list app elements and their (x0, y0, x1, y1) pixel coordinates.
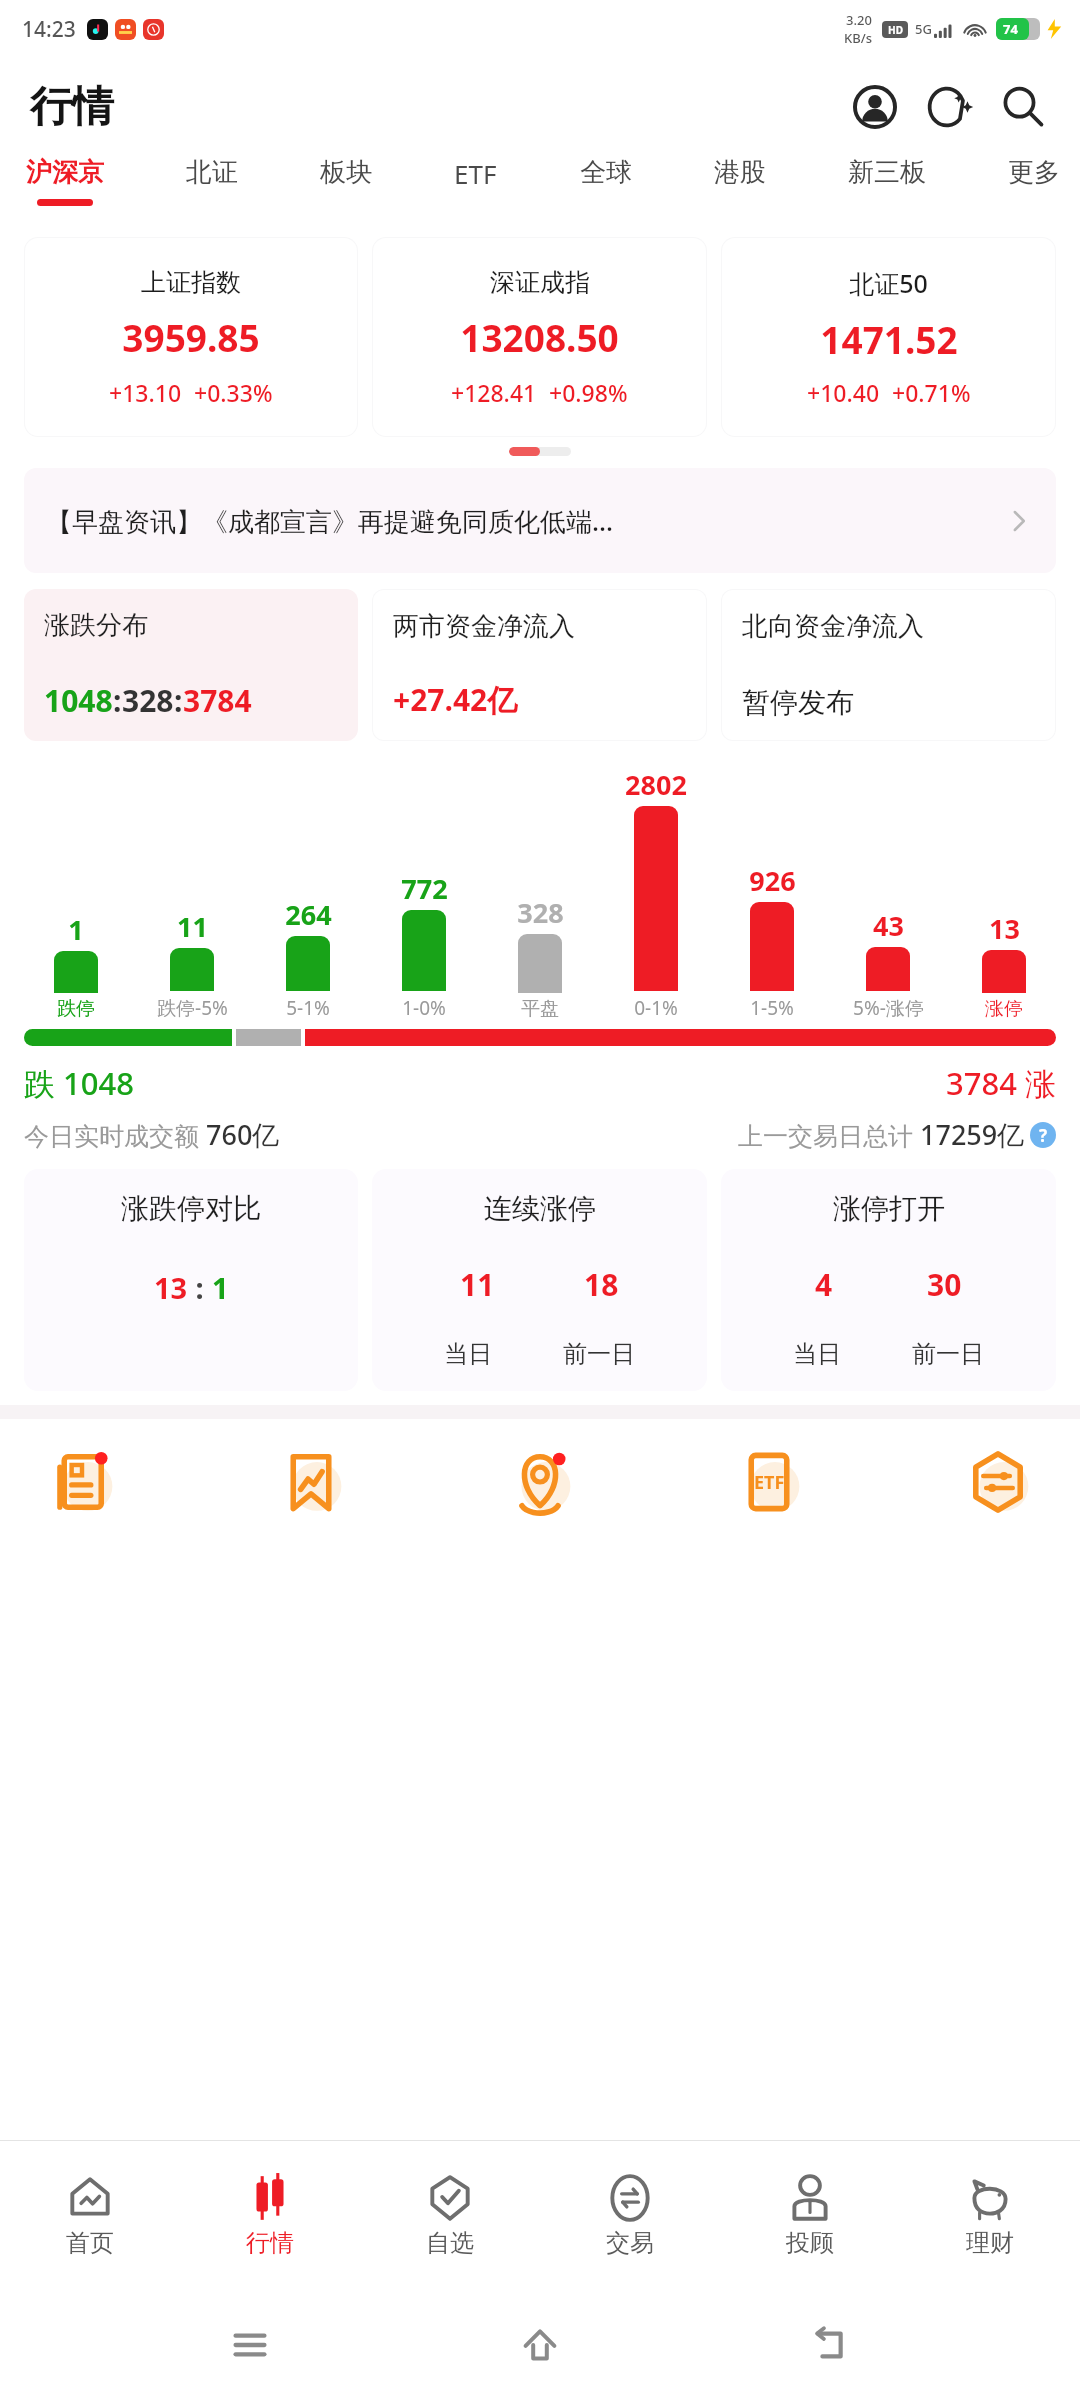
staticText: 上一交易日总计 (738, 1118, 920, 1152)
button[interactable]: Info (1030, 1122, 1056, 1148)
staticText: 涨跌停对比 (121, 1191, 261, 1226)
button[interactable]: Search (992, 76, 1054, 138)
staticText: 【早盘资讯】《成都宣言》再提避免同质化低端… (46, 503, 1004, 539)
button[interactable]: 自选 (360, 2154, 540, 2276)
staticText: 当日 (444, 1339, 492, 1369)
staticText: +0.98% (549, 377, 628, 408)
button[interactable]: 更多 (1006, 156, 1062, 199)
staticText: 前一日 (912, 1339, 984, 1369)
button[interactable]: 涨跌分布 (24, 589, 358, 741)
staticText: 暂停发布 (742, 685, 854, 720)
staticText: 5%-涨停 (853, 995, 924, 1021)
button[interactable]: ETF (452, 156, 499, 201)
staticText: 上证指数 (141, 267, 241, 298)
staticText: 3959.85 (122, 312, 260, 362)
button[interactable]: Home (500, 2305, 580, 2385)
button[interactable]: 北证50 (722, 238, 1055, 436)
button[interactable]: Recents (210, 2305, 290, 2385)
button[interactable]: 深证成指 (373, 238, 706, 436)
button[interactable]: 板块 (318, 156, 374, 199)
staticText: 板块 (320, 156, 372, 189)
staticText: 全球 (580, 156, 632, 189)
staticText: 3.20 (846, 11, 872, 29)
staticText: 前一日 (563, 1339, 635, 1369)
button[interactable]: 新三板 (846, 156, 928, 199)
staticText: 更多 (1008, 156, 1060, 189)
staticText: 跌停 (57, 997, 95, 1021)
staticText: ETF (754, 1470, 785, 1495)
button[interactable]: 涨停打开 (721, 1169, 1056, 1391)
staticText: +128.41 (451, 377, 537, 408)
button[interactable]: 交易 (540, 2154, 720, 2276)
staticText: 772 (401, 870, 448, 907)
staticText: 跌 1048 (24, 1062, 134, 1104)
staticText: 港股 (714, 156, 766, 189)
staticText: 328 (122, 680, 174, 721)
button[interactable]: 【早盘资讯】《成都宣言》再提避免同质化低端… (24, 468, 1056, 573)
staticText: 74 (1003, 20, 1018, 38)
staticText: 行情 (246, 2228, 294, 2258)
button[interactable]: 涨跌停对比 (24, 1169, 358, 1391)
staticText: 328 (517, 894, 564, 931)
button[interactable]: Tools (950, 1434, 1046, 1530)
staticText: 涨停 (985, 997, 1023, 1021)
staticText: 理财 (966, 2228, 1014, 2258)
button[interactable]: 沪深京 (24, 156, 106, 206)
staticText: +0.71% (892, 377, 971, 408)
staticText: +27.42亿 (393, 679, 518, 720)
staticText: : (174, 680, 183, 721)
staticText: 北向资金净流入 (742, 610, 924, 643)
button[interactable]: 两市资金净流入 (373, 590, 706, 740)
button[interactable]: News (34, 1434, 130, 1530)
button[interactable]: 北证 (184, 156, 240, 199)
staticText: 今日实时成交额 (24, 1118, 206, 1152)
staticText: 4 (815, 1264, 833, 1305)
button[interactable]: 全球 (578, 156, 634, 199)
staticText: 760亿 (206, 1116, 280, 1153)
button[interactable]: 连续涨停 (372, 1169, 707, 1391)
button[interactable]: 港股 (712, 156, 768, 199)
button[interactable]: ETF (721, 1434, 817, 1530)
staticText: 北证 (186, 156, 238, 189)
button[interactable]: Trend (263, 1434, 359, 1530)
staticText: 跌停-5% (157, 995, 228, 1021)
staticText: 交易 (606, 2228, 654, 2258)
button[interactable]: Radar (492, 1434, 588, 1530)
staticText: 11 (177, 908, 208, 945)
staticText: 1048 (44, 680, 113, 721)
button[interactable]: 上证指数 (25, 238, 357, 436)
staticText: +0.33% (194, 377, 273, 408)
staticText: 30 (927, 1264, 962, 1305)
staticText: 连续涨停 (484, 1191, 596, 1226)
button[interactable]: Night mode (918, 76, 980, 138)
button[interactable]: 理财 (900, 2154, 1080, 2276)
staticText: 18 (584, 1264, 619, 1305)
staticText: : (113, 680, 122, 721)
staticText: 两市资金净流入 (393, 610, 575, 643)
button[interactable]: Account (844, 76, 906, 138)
button[interactable]: 投顾 (720, 2154, 900, 2276)
staticText: 新三板 (848, 156, 926, 189)
staticText: 1 (212, 1268, 229, 1307)
button[interactable]: Back (790, 2305, 870, 2385)
staticText: 1471.52 (820, 314, 958, 364)
button[interactable]: 北向资金净流入 (722, 590, 1055, 740)
staticText: 1-5% (750, 995, 794, 1021)
staticText: 926 (749, 862, 796, 899)
staticText: 3784 (183, 680, 252, 721)
staticText: 5G (915, 20, 932, 38)
staticText: 沪深京 (26, 156, 104, 189)
staticText: 当日 (793, 1339, 841, 1369)
staticText: 5-1% (286, 995, 330, 1021)
button[interactable]: 首页 (0, 2154, 180, 2276)
staticText: 14:23 (22, 15, 76, 44)
staticText: 264 (285, 896, 332, 933)
staticText: 13 (154, 1268, 188, 1307)
staticText: +10.40 (807, 377, 880, 408)
staticText: 投顾 (786, 2228, 834, 2258)
staticText: 11 (460, 1264, 495, 1305)
staticText: 1 (68, 911, 84, 948)
button[interactable]: 行情 (180, 2154, 360, 2276)
staticText: 涨停打开 (833, 1191, 945, 1226)
staticText: 13 (989, 910, 1020, 947)
